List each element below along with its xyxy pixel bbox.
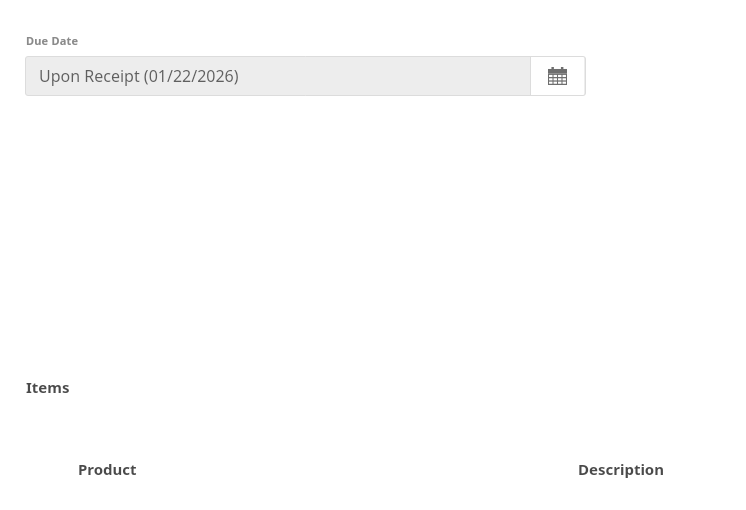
staticText: Upon Receipt (01/22/2026) <box>39 65 239 87</box>
staticText: Product <box>78 459 137 479</box>
button[interactable]: Open date picker <box>531 57 584 95</box>
staticText: Description <box>578 459 664 479</box>
staticText: Items <box>26 377 70 397</box>
button[interactable]: Upon Receipt (01/22/2026) <box>25 57 530 95</box>
staticText: Due Date <box>26 33 79 48</box>
